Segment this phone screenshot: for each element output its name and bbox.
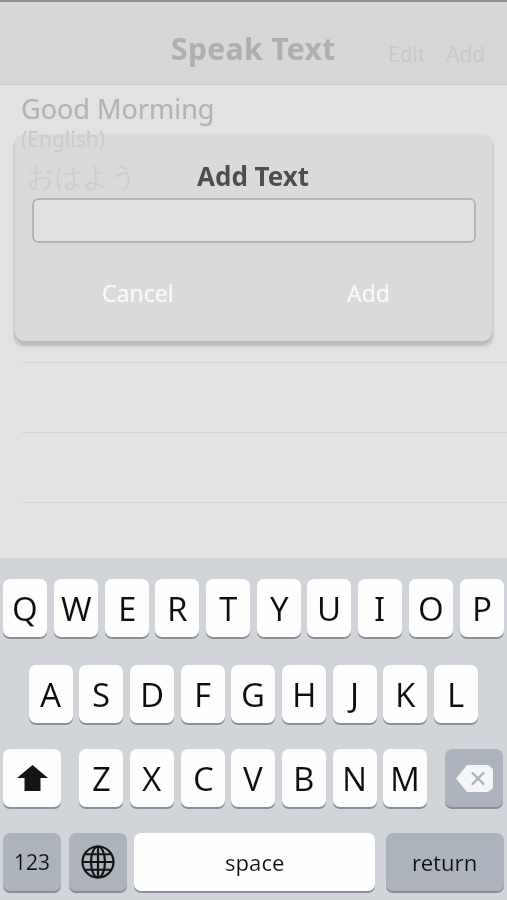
button[interactable]	[0, 295, 507, 365]
button[interactable]	[3, 749, 61, 807]
button[interactable]: Add	[446, 40, 486, 69]
staticText: B	[293, 756, 315, 801]
staticText: G	[241, 672, 266, 717]
button[interactable]: B	[282, 749, 326, 807]
staticText: Z	[92, 756, 111, 801]
button[interactable]	[0, 155, 507, 225]
staticText: E	[118, 586, 137, 631]
staticText: F	[194, 672, 212, 717]
staticText: space	[225, 847, 285, 877]
button[interactable]: H	[282, 665, 326, 723]
button[interactable]: O	[409, 579, 453, 637]
button[interactable]	[32, 198, 476, 243]
staticText: O	[418, 586, 444, 631]
staticText: Cancel	[102, 277, 174, 308]
button[interactable]: Z	[79, 749, 123, 807]
staticText: D	[140, 672, 165, 717]
staticText: (English)	[21, 134, 106, 154]
button[interactable]: V	[231, 749, 275, 807]
staticText: J	[350, 672, 360, 717]
staticText: 123	[14, 848, 51, 877]
staticText: N	[342, 756, 368, 801]
staticText: Edit	[388, 40, 426, 69]
button[interactable]: Add	[342, 272, 394, 312]
staticText: Speak Text	[171, 28, 336, 69]
button[interactable]: M	[383, 749, 427, 807]
button[interactable]: Edit	[388, 40, 426, 69]
button[interactable]: L	[434, 665, 478, 723]
button[interactable]	[69, 833, 127, 891]
button[interactable]: E	[105, 579, 149, 637]
button[interactable]: return	[386, 833, 504, 891]
button[interactable]	[0, 225, 507, 295]
button[interactable]: U	[307, 579, 351, 637]
button[interactable]	[445, 749, 503, 807]
button[interactable]: F	[181, 665, 225, 723]
button[interactable]: Q	[3, 579, 47, 637]
staticText: Add	[446, 40, 486, 69]
staticText: Q	[12, 586, 38, 631]
button[interactable]: N	[333, 749, 377, 807]
button[interactable]: D	[130, 665, 174, 723]
staticText: K	[395, 672, 416, 717]
staticText: I	[374, 586, 386, 631]
button[interactable]: S	[79, 665, 123, 723]
button[interactable]: I	[358, 579, 402, 637]
staticText: return	[412, 847, 478, 877]
staticText: Add	[347, 277, 390, 308]
button[interactable]: space	[134, 833, 375, 891]
staticText: P	[472, 586, 492, 631]
button[interactable]: R	[155, 579, 199, 637]
button[interactable]: 123	[3, 833, 61, 891]
staticText: C	[193, 756, 214, 801]
button[interactable]: Cancel	[100, 272, 176, 312]
staticText: T	[219, 586, 238, 631]
staticText: V	[243, 756, 263, 801]
button[interactable]: K	[383, 665, 427, 723]
staticText: Add Text	[197, 158, 310, 193]
staticText: Y	[270, 586, 289, 631]
staticText: X	[142, 756, 162, 801]
staticText: U	[317, 586, 342, 631]
staticText: L	[447, 672, 465, 717]
staticText: (English)	[21, 125, 106, 154]
staticText: おはよう	[27, 160, 138, 194]
button[interactable]: T	[206, 579, 250, 637]
button[interactable]: W	[54, 579, 98, 637]
staticText: H	[292, 672, 317, 717]
button[interactable]: Y	[257, 579, 301, 637]
button[interactable]	[0, 85, 507, 155]
button[interactable]: X	[130, 749, 174, 807]
button[interactable]: G	[231, 665, 275, 723]
button[interactable]: A	[29, 665, 73, 723]
staticText: S	[92, 672, 111, 717]
button[interactable]: C	[181, 749, 225, 807]
staticText: A	[40, 672, 62, 717]
staticText: R	[167, 586, 188, 631]
button[interactable]: P	[460, 579, 504, 637]
button[interactable]: J	[333, 665, 377, 723]
staticText: Good Morming	[21, 90, 215, 127]
staticText: W	[61, 586, 92, 631]
staticText: M	[390, 756, 420, 801]
